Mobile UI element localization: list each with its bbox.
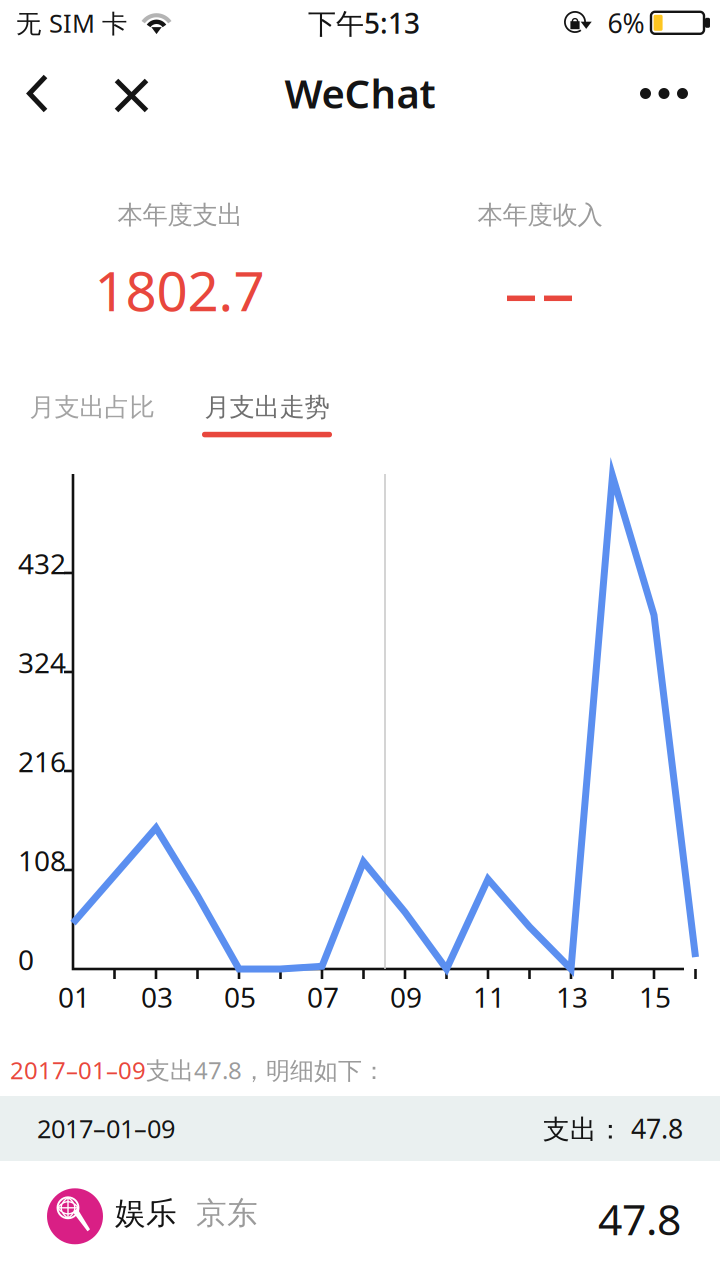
staticText: 324 — [18, 644, 66, 681]
button[interactable]: 月支出走势 — [191, 381, 343, 445]
staticText: 月支出走势 — [204, 392, 329, 423]
staticText: WeChat — [284, 66, 435, 119]
staticText: 13 — [556, 978, 588, 1016]
staticText: 本年度收入 — [477, 199, 602, 230]
button[interactable]: More — [623, 58, 705, 128]
staticText: 6% — [607, 5, 644, 41]
button[interactable]: Back — [1, 58, 73, 128]
button[interactable]: 娱乐 — [0, 1166, 720, 1266]
button[interactable]: 月支出占比 — [16, 381, 168, 445]
staticText: 0 — [18, 941, 34, 978]
staticText: 108 — [18, 842, 66, 879]
staticText: 11 — [473, 978, 505, 1016]
staticText: 2017–01–09 — [37, 1112, 175, 1145]
staticText: 下午5:13 — [308, 4, 420, 42]
staticText: 支出47.8，明细如下： — [146, 1054, 386, 1086]
staticText: 2017–01–09 — [10, 1054, 146, 1086]
staticText: 本年度支出 — [117, 199, 242, 230]
staticText: 432 — [18, 545, 66, 582]
staticText: 月支出占比 — [29, 392, 154, 423]
staticText: 01 — [58, 978, 90, 1016]
staticText: 京东 — [196, 1194, 258, 1232]
staticText: 09 — [390, 978, 422, 1016]
staticText: 1802.7 — [94, 254, 264, 326]
staticText: 07 — [307, 978, 339, 1016]
staticText: 娱乐 — [115, 1194, 177, 1232]
button[interactable]: Close — [95, 60, 167, 130]
staticText: 03 — [141, 978, 173, 1016]
staticText: 216 — [18, 743, 66, 780]
staticText: 无 SIM 卡 — [16, 6, 127, 40]
staticText: 15 — [639, 978, 671, 1016]
staticText: 支出： 47.8 — [543, 1111, 683, 1146]
staticText: 47.8 — [598, 1190, 681, 1247]
staticText: 05 — [224, 978, 256, 1016]
